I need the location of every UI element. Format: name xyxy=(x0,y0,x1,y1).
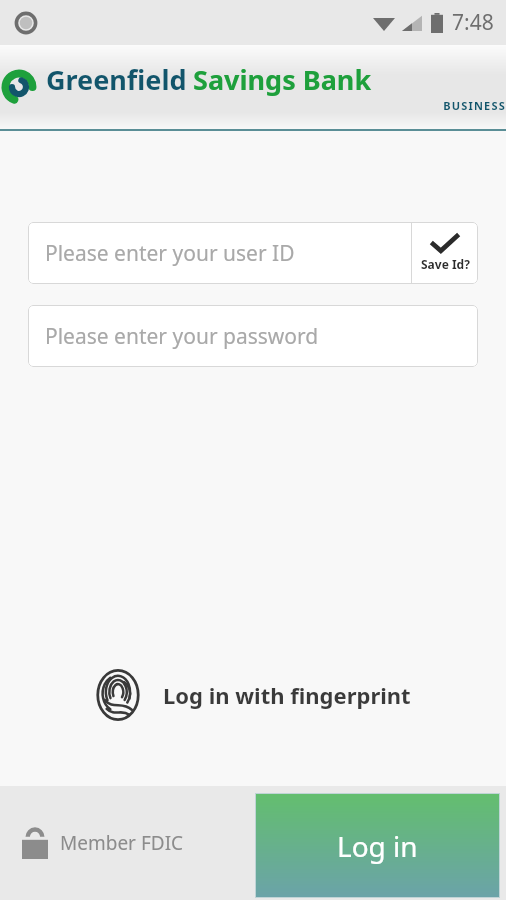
staticText: Member FDIC xyxy=(60,830,184,856)
button[interactable]: Log in xyxy=(255,793,500,898)
staticText: BUSINESS xyxy=(46,98,506,113)
staticText: Log in xyxy=(337,827,418,865)
staticText: Please enter your user ID xyxy=(45,239,295,268)
button[interactable]: Member FDIC xyxy=(22,827,184,859)
staticText: Savings Bank xyxy=(193,61,372,98)
button[interactable]: Please enter your password xyxy=(28,305,478,367)
button[interactable]: Please enter your user ID xyxy=(28,222,411,284)
staticText: Greenfield xyxy=(46,61,187,98)
staticText: 7:48 xyxy=(452,8,494,37)
button[interactable]: Log in with fingerprint xyxy=(0,667,506,723)
staticText: Save Id? xyxy=(421,256,470,272)
staticText: Please enter your password xyxy=(45,322,319,351)
staticText: Log in with fingerprint xyxy=(163,680,411,710)
button[interactable]: Save Id xyxy=(412,222,478,284)
